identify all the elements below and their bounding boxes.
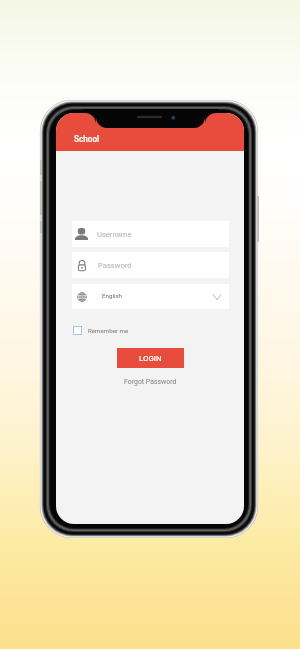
staticText: School [74,134,100,144]
staticText: Remember me [88,327,129,334]
button[interactable]: LOGIN [117,348,184,368]
button[interactable]: Remember me [73,326,129,335]
button[interactable]: Username [72,221,229,247]
staticText: Username [97,230,132,239]
staticText: LOGIN [139,354,162,363]
staticText: English [102,292,123,299]
button[interactable]: English [72,284,229,309]
other: Select language [213,294,221,300]
button[interactable]: Forgot Password [124,378,177,386]
staticText: Password [98,261,132,270]
button[interactable]: Password [72,252,229,278]
